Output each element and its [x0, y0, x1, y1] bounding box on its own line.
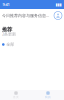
- button[interactable]: Account: [54, 11, 62, 19]
- staticText: 首页: [13, 95, 19, 99]
- staticText: ▮▮▮: [55, 2, 61, 7]
- button[interactable]: 我的: [32, 90, 64, 100]
- staticText: 今日推荐内容与服务信息汇总: [2, 13, 52, 18]
- staticText: 全部: [6, 42, 14, 47]
- button[interactable]: 全部: [0, 42, 64, 47]
- staticText: 2条更新: [2, 31, 16, 37]
- staticText: 推荐: [2, 26, 12, 33]
- staticText: 我的: [45, 95, 51, 99]
- staticText: 9:41: [2, 2, 9, 7]
- button[interactable]: 首页: [0, 90, 32, 100]
